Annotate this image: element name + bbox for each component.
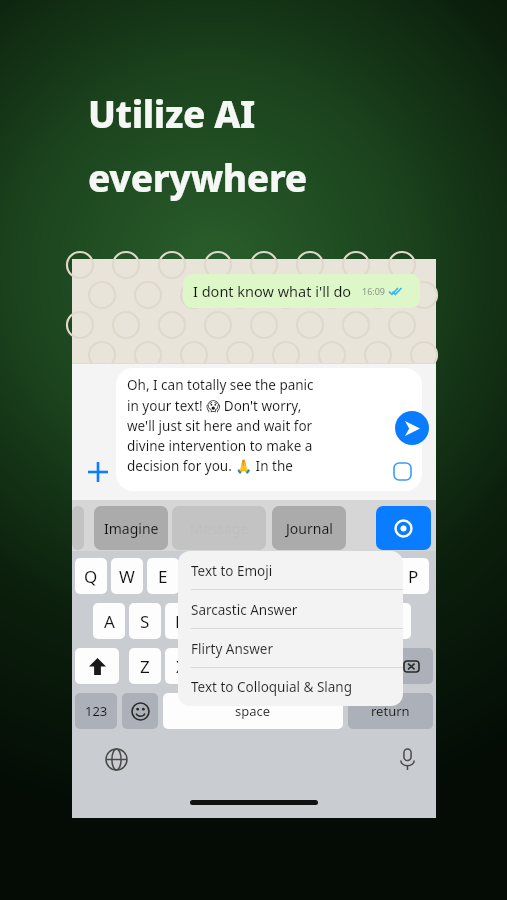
- button[interactable]: Y: [254, 558, 286, 594]
- button[interactable]: C: [201, 648, 233, 684]
- button[interactable]: M: [344, 648, 376, 684]
- button[interactable]: L: [379, 603, 411, 639]
- staticText: return: [371, 702, 410, 720]
- button[interactable]: Change keyboard: [98, 741, 134, 777]
- staticText: Journal: [286, 519, 333, 538]
- button[interactable]: I: [326, 558, 358, 594]
- button[interactable]: Z: [129, 648, 161, 684]
- button[interactable]: I dont know what i'll do: [183, 274, 420, 308]
- staticText: Z: [140, 655, 150, 678]
- button[interactable]: Sarcastic Answer: [178, 590, 403, 629]
- staticText: Text to Colloquial & Slang: [191, 678, 353, 696]
- staticText: K: [355, 610, 366, 633]
- staticText: C: [212, 655, 223, 678]
- button[interactable]: V: [236, 648, 268, 684]
- staticText: J: [322, 610, 327, 633]
- staticText: Utilize AI: [88, 88, 255, 138]
- button[interactable]: H: [272, 603, 304, 639]
- staticText: Y: [265, 565, 275, 588]
- staticText: V: [247, 655, 258, 678]
- staticText: A: [104, 610, 115, 633]
- staticText: Imagine: [104, 519, 159, 538]
- button[interactable]: G: [236, 603, 268, 639]
- staticText: S: [140, 610, 150, 633]
- staticText: L: [391, 610, 400, 633]
- staticText: Oh, I can totally see the panic in your …: [127, 376, 314, 475]
- button[interactable]: Oh, I can totally see the panic in your …: [116, 368, 422, 491]
- button[interactable]: Attach: [80, 454, 116, 490]
- staticText: D: [175, 610, 188, 633]
- button[interactable]: space: [163, 693, 343, 729]
- button[interactable]: 123: [75, 693, 117, 729]
- button[interactable]: O: [361, 558, 393, 594]
- button[interactable]: Text to Emoji: [178, 551, 403, 590]
- staticText: X: [176, 655, 186, 678]
- button[interactable]: W: [111, 558, 143, 594]
- button[interactable]: Imagine: [94, 506, 168, 550]
- staticText: W: [119, 565, 135, 588]
- staticText: H: [282, 610, 295, 633]
- button[interactable]: return: [348, 693, 433, 729]
- button[interactable]: J: [308, 603, 340, 639]
- staticText: Sarcastic Answer: [191, 601, 298, 619]
- staticText: I dont know what i'll do: [193, 281, 352, 301]
- staticText: E: [158, 565, 168, 588]
- button[interactable]: [122, 693, 158, 729]
- button[interactable]: P: [397, 558, 429, 594]
- staticText: M: [352, 655, 368, 678]
- staticText: F: [212, 610, 221, 633]
- button[interactable]: Send: [395, 411, 429, 445]
- button[interactable]: S: [129, 603, 161, 639]
- staticText: 123: [85, 702, 108, 720]
- button[interactable]: U: [290, 558, 322, 594]
- button[interactable]: [75, 648, 119, 684]
- button[interactable]: Journal: [272, 506, 346, 550]
- button[interactable]: Dictate: [389, 741, 425, 777]
- button[interactable]: T: [218, 558, 250, 594]
- button[interactable]: A: [93, 603, 125, 639]
- staticText: Text to Emoji: [191, 562, 273, 580]
- button[interactable]: N: [308, 648, 340, 684]
- button[interactable]: Q: [75, 558, 107, 594]
- staticText: P: [408, 565, 419, 588]
- button[interactable]: Settings: [376, 506, 431, 550]
- button[interactable]: F: [200, 603, 232, 639]
- button[interactable]: Stickers: [390, 459, 414, 483]
- staticText: B: [282, 655, 294, 678]
- button[interactable]: Flirty Answer: [178, 629, 403, 668]
- button[interactable]: D: [165, 603, 197, 639]
- button[interactable]: [389, 648, 433, 684]
- button[interactable]: Text to Colloquial & Slang: [178, 668, 403, 706]
- staticText: Q: [84, 565, 98, 588]
- staticText: space: [235, 702, 271, 720]
- button[interactable]: E: [147, 558, 179, 594]
- staticText: 16:09: [362, 285, 386, 297]
- button[interactable]: B: [272, 648, 304, 684]
- staticText: R: [193, 565, 204, 588]
- staticText: N: [318, 655, 331, 678]
- staticText: G: [246, 610, 259, 633]
- staticText: Flirty Answer: [191, 640, 274, 658]
- button[interactable]: [72, 506, 84, 550]
- button[interactable]: K: [344, 603, 376, 639]
- staticText: T: [229, 565, 239, 588]
- button[interactable]: X: [165, 648, 197, 684]
- button[interactable]: R: [182, 558, 214, 594]
- staticText: everywhere: [88, 152, 307, 202]
